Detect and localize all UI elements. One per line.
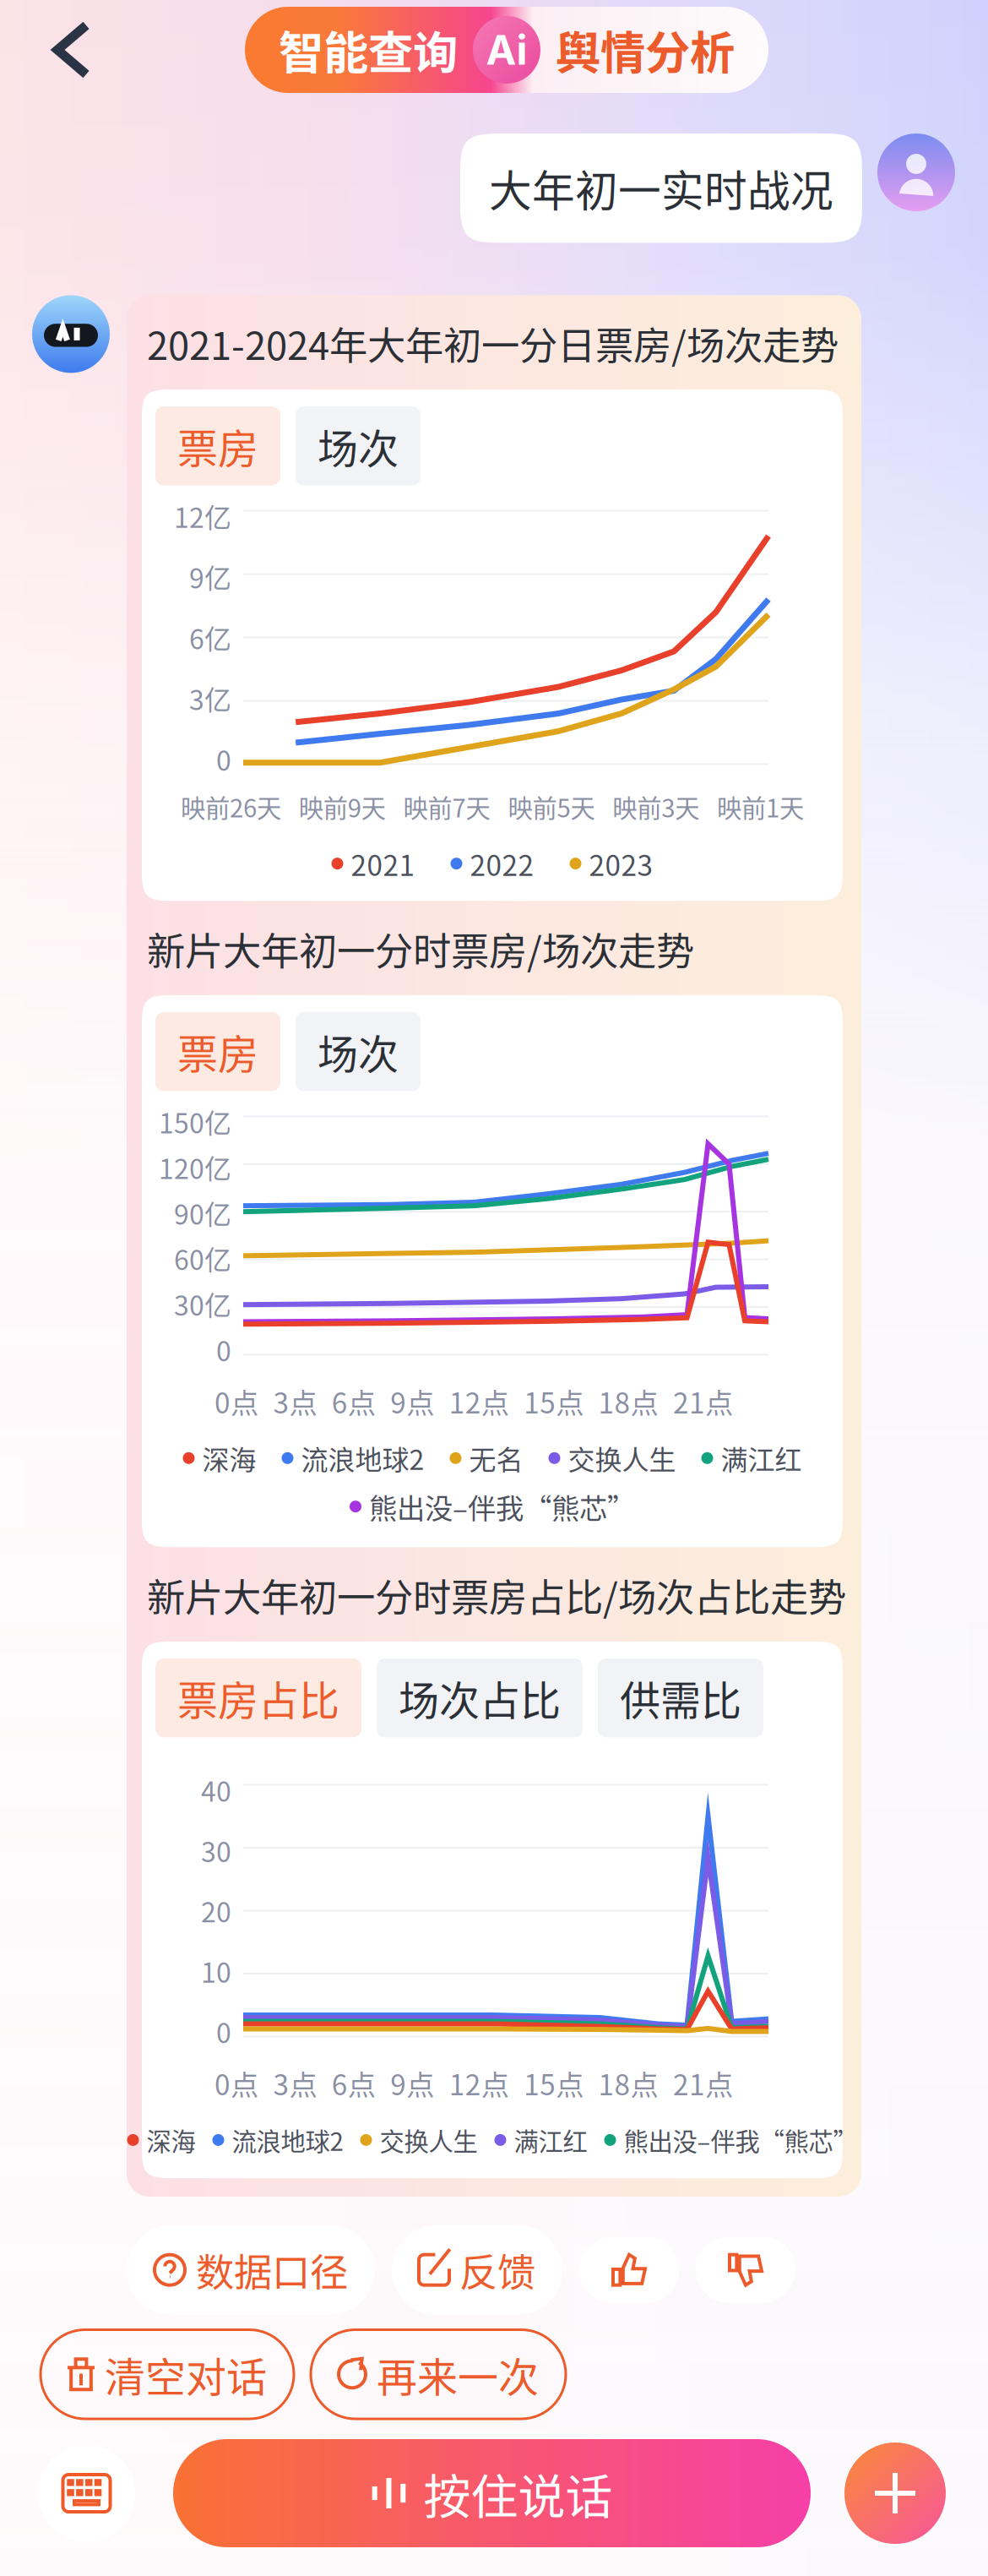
staticText: 21点 [673, 1381, 733, 1422]
staticText: 场次占比 [399, 1669, 561, 1727]
staticText: 18点 [598, 2063, 658, 2103]
button[interactable]: Keyboard [38, 2445, 135, 2542]
staticText: 再来一次 [377, 2345, 539, 2404]
staticText: 30亿 [174, 1284, 231, 1323]
staticText: 新片大年初一分时票房/场次走势 [147, 921, 694, 977]
staticText: 30 [201, 1831, 231, 1870]
staticText: 3点 [273, 1381, 317, 1422]
button[interactable]: 票房 [155, 406, 280, 485]
button[interactable]: 票房 [155, 1012, 280, 1091]
staticText: 按住说话 [423, 2459, 613, 2528]
staticText: Ai [486, 25, 527, 74]
staticText: 清空对话 [105, 2345, 267, 2404]
staticText: 熊出没–伴我“熊芯” [624, 2122, 858, 2158]
staticText: 3亿 [189, 679, 231, 718]
staticText: 10 [201, 1951, 231, 1991]
staticText: 12点 [449, 2063, 509, 2103]
staticText: 0点 [214, 1381, 258, 1422]
button[interactable]: 场次占比 [377, 1658, 583, 1737]
staticText: 120亿 [159, 1148, 231, 1187]
staticText: 9点 [390, 2063, 434, 2103]
button[interactable]: Back [0, 3, 120, 96]
staticText: 满江红 [514, 2122, 587, 2158]
staticText: 18点 [598, 1381, 658, 1422]
button[interactable]: 再来一次 [311, 2330, 566, 2419]
button[interactable]: 按住说话 [173, 2439, 811, 2547]
staticText: 场次 [318, 1022, 399, 1081]
staticText: 交换人生 [380, 2122, 478, 2158]
staticText: 3点 [273, 2063, 317, 2103]
staticText: 智能查询 [279, 17, 458, 82]
staticText: 60亿 [174, 1239, 231, 1278]
staticText: 2021-2024年大年初一分日票房/场次走势 [147, 315, 839, 371]
button[interactable]: 数据口径 [127, 2225, 375, 2315]
button[interactable]: 场次 [296, 1012, 421, 1091]
staticText: 流浪地球2 [301, 1439, 424, 1478]
button[interactable]: 反馈 [392, 2225, 562, 2315]
staticText: 数据口径 [196, 2242, 348, 2298]
button[interactable]: 场次 [296, 406, 421, 485]
staticText: 票房 [177, 1022, 258, 1081]
staticText: 交换人生 [568, 1439, 676, 1478]
button[interactable]: 清空对话 [41, 2330, 294, 2419]
staticText: 150亿 [159, 1102, 231, 1141]
staticText: 40 [201, 1770, 231, 1809]
staticText: 2023 [589, 843, 653, 884]
staticText: 2022 [470, 843, 534, 884]
staticText: 无名 [469, 1439, 523, 1478]
staticText: 供需比 [620, 1669, 741, 1727]
staticText: 反馈 [459, 2242, 535, 2298]
staticText: 6点 [332, 1381, 376, 1422]
button[interactable]: 票房占比 [155, 1658, 361, 1737]
staticText: 新片大年初一分时票房占比/场次占比走势 [147, 1567, 846, 1623]
staticText: 9亿 [189, 557, 231, 596]
button[interactable]: Like [579, 2237, 679, 2303]
staticText: 20 [201, 1891, 231, 1930]
staticText: 场次 [318, 417, 399, 475]
staticText: 舆情分析 [556, 17, 735, 82]
staticText: 票房占比 [177, 1669, 339, 1727]
staticText: 映前7天 [403, 789, 490, 825]
staticText: 12亿 [174, 496, 231, 535]
staticText: 映前1天 [717, 789, 804, 825]
button[interactable]: More [844, 2443, 946, 2544]
staticText: 12点 [449, 1381, 509, 1422]
staticText: 深海 [202, 1439, 256, 1478]
staticText: 15点 [524, 2063, 584, 2103]
staticText: 映前26天 [181, 789, 281, 825]
staticText: 映前3天 [612, 789, 699, 825]
staticText: 0 [216, 739, 231, 779]
staticText: 90亿 [174, 1193, 231, 1232]
staticText: 熊出没–伴我“熊芯” [369, 1486, 635, 1527]
staticText: 6点 [332, 2063, 376, 2103]
button[interactable]: 供需比 [598, 1658, 763, 1737]
staticText: 0点 [214, 2063, 258, 2103]
staticText: 0 [216, 1330, 231, 1369]
staticText: 大年初一实时战况 [489, 157, 833, 219]
staticText: 15点 [524, 1381, 584, 1422]
staticText: 深海 [147, 2122, 195, 2158]
staticText: 映前5天 [508, 789, 595, 825]
staticText: 0 [216, 2012, 231, 2051]
staticText: 流浪地球2 [232, 2122, 343, 2158]
staticText: 满江红 [721, 1439, 802, 1478]
staticText: 映前9天 [299, 789, 386, 825]
staticText: 6亿 [189, 618, 231, 657]
staticText: 票房 [177, 417, 258, 475]
staticText: 2021 [351, 843, 415, 884]
staticText: 21点 [673, 2063, 733, 2103]
staticText: 9点 [390, 1381, 434, 1422]
button[interactable]: Dislike [696, 2237, 795, 2303]
